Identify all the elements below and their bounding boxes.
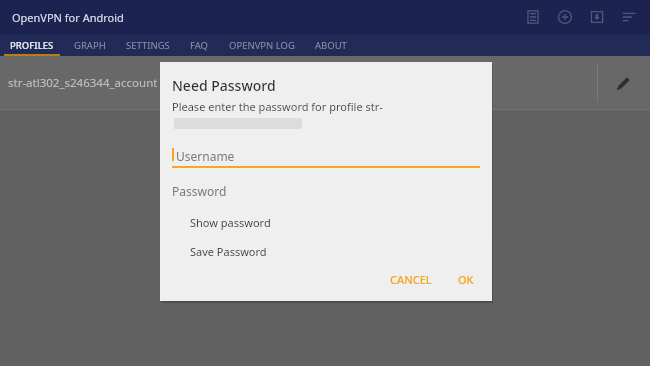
staticText: Save Password (190, 244, 267, 259)
button[interactable]: OPENVPN LOG (219, 34, 305, 56)
staticText: OPENVPN LOG (229, 39, 295, 52)
button[interactable]: SETTINGS (116, 34, 180, 56)
staticText: PROFILES (10, 39, 54, 52)
staticText: Need Password (172, 76, 276, 95)
staticText: ABOUT (315, 39, 347, 52)
button[interactable]: str-atl302_s246344_account (0, 56, 650, 110)
staticText: OpenVPN for Android (12, 10, 124, 25)
staticText: OK (458, 272, 474, 287)
button[interactable]: CANCEL (384, 268, 438, 291)
button[interactable]: FAQ (180, 34, 219, 56)
button[interactable]: Add profile (552, 4, 578, 30)
button[interactable]: Edit profile (598, 56, 650, 110)
button[interactable]: GRAPH (64, 34, 116, 56)
button[interactable]: Username (172, 144, 480, 168)
button[interactable]: Sort (616, 4, 642, 30)
staticText: Show password (190, 215, 271, 230)
staticText: FAQ (190, 39, 209, 52)
button[interactable]: ABOUT (305, 34, 357, 56)
button[interactable]: Save Password (172, 243, 480, 259)
button[interactable]: OK (452, 268, 480, 291)
button[interactable]: PROFILES (0, 34, 64, 56)
staticText: GRAPH (74, 39, 106, 52)
button[interactable]: Import profile (584, 4, 610, 30)
staticText: SETTINGS (126, 39, 170, 52)
staticText: Please enter the password for profile st… (172, 99, 383, 114)
staticText: Password (172, 183, 227, 199)
button[interactable]: Profile list (520, 4, 546, 30)
staticText: Username (176, 148, 235, 164)
staticText: str-atl302_s246344_account (8, 75, 158, 91)
button[interactable]: Show password (172, 214, 480, 230)
staticText: CANCEL (390, 272, 432, 287)
button[interactable]: Password (172, 180, 480, 202)
